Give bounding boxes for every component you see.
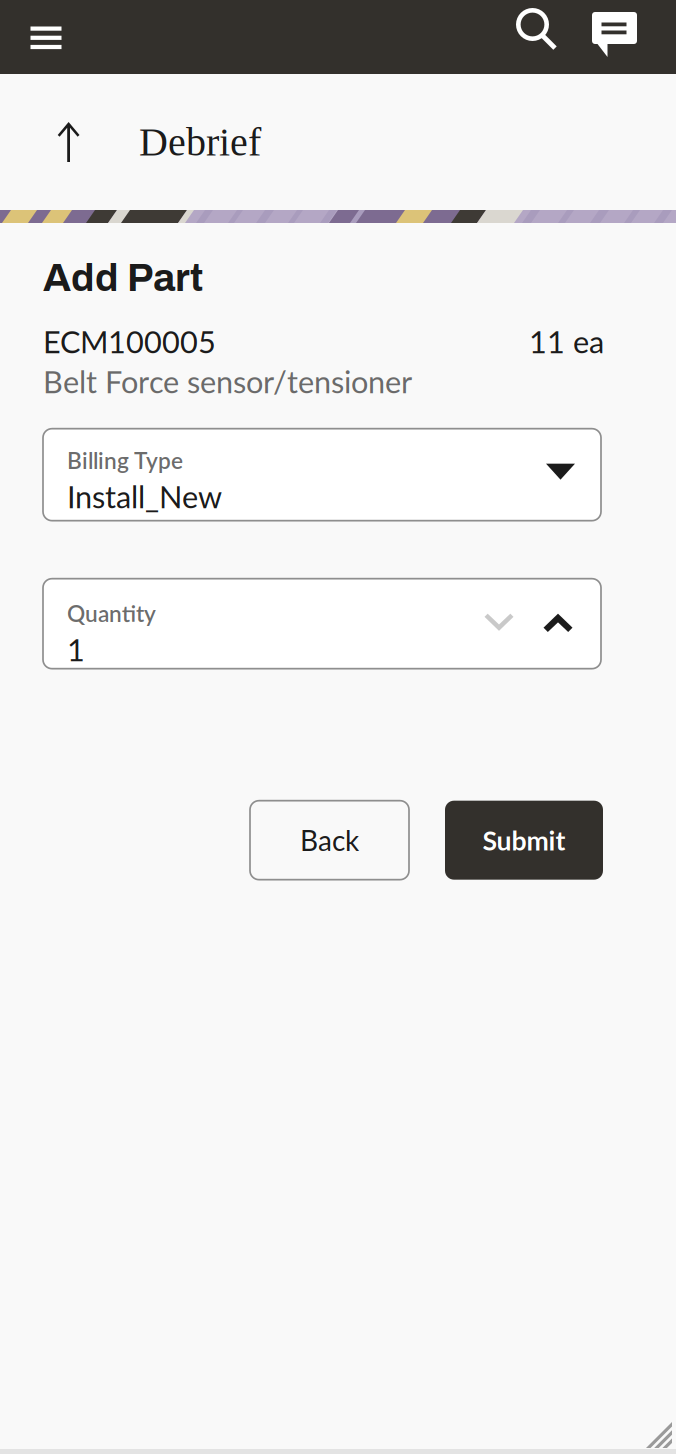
- staticText: Add Part: [43, 257, 203, 299]
- staticText: Belt Force sensor/tensioner: [43, 363, 412, 400]
- staticText: Billing Type: [67, 447, 183, 474]
- staticText: Back: [300, 823, 359, 857]
- staticText: Submit: [482, 824, 565, 856]
- button[interactable]: Back: [31, 107, 107, 177]
- button[interactable]: Submit: [445, 801, 603, 880]
- button[interactable]: Menu: [15, 0, 77, 74]
- button[interactable]: Increase quantity: [529, 579, 587, 671]
- button[interactable]: Messages: [583, 0, 645, 74]
- staticText: Install_New: [67, 478, 222, 515]
- staticText: Debrief: [139, 120, 261, 164]
- button[interactable]: Search: [505, 0, 567, 74]
- staticText: Quantity: [67, 600, 156, 627]
- staticText: ECM100005: [43, 323, 216, 360]
- staticText: 1: [67, 631, 85, 668]
- button[interactable]: Back: [250, 801, 409, 880]
- staticText: 11 ea: [529, 323, 604, 360]
- button[interactable]: Decrease quantity: [469, 579, 529, 671]
- button[interactable]: Billing Type: [43, 429, 601, 521]
